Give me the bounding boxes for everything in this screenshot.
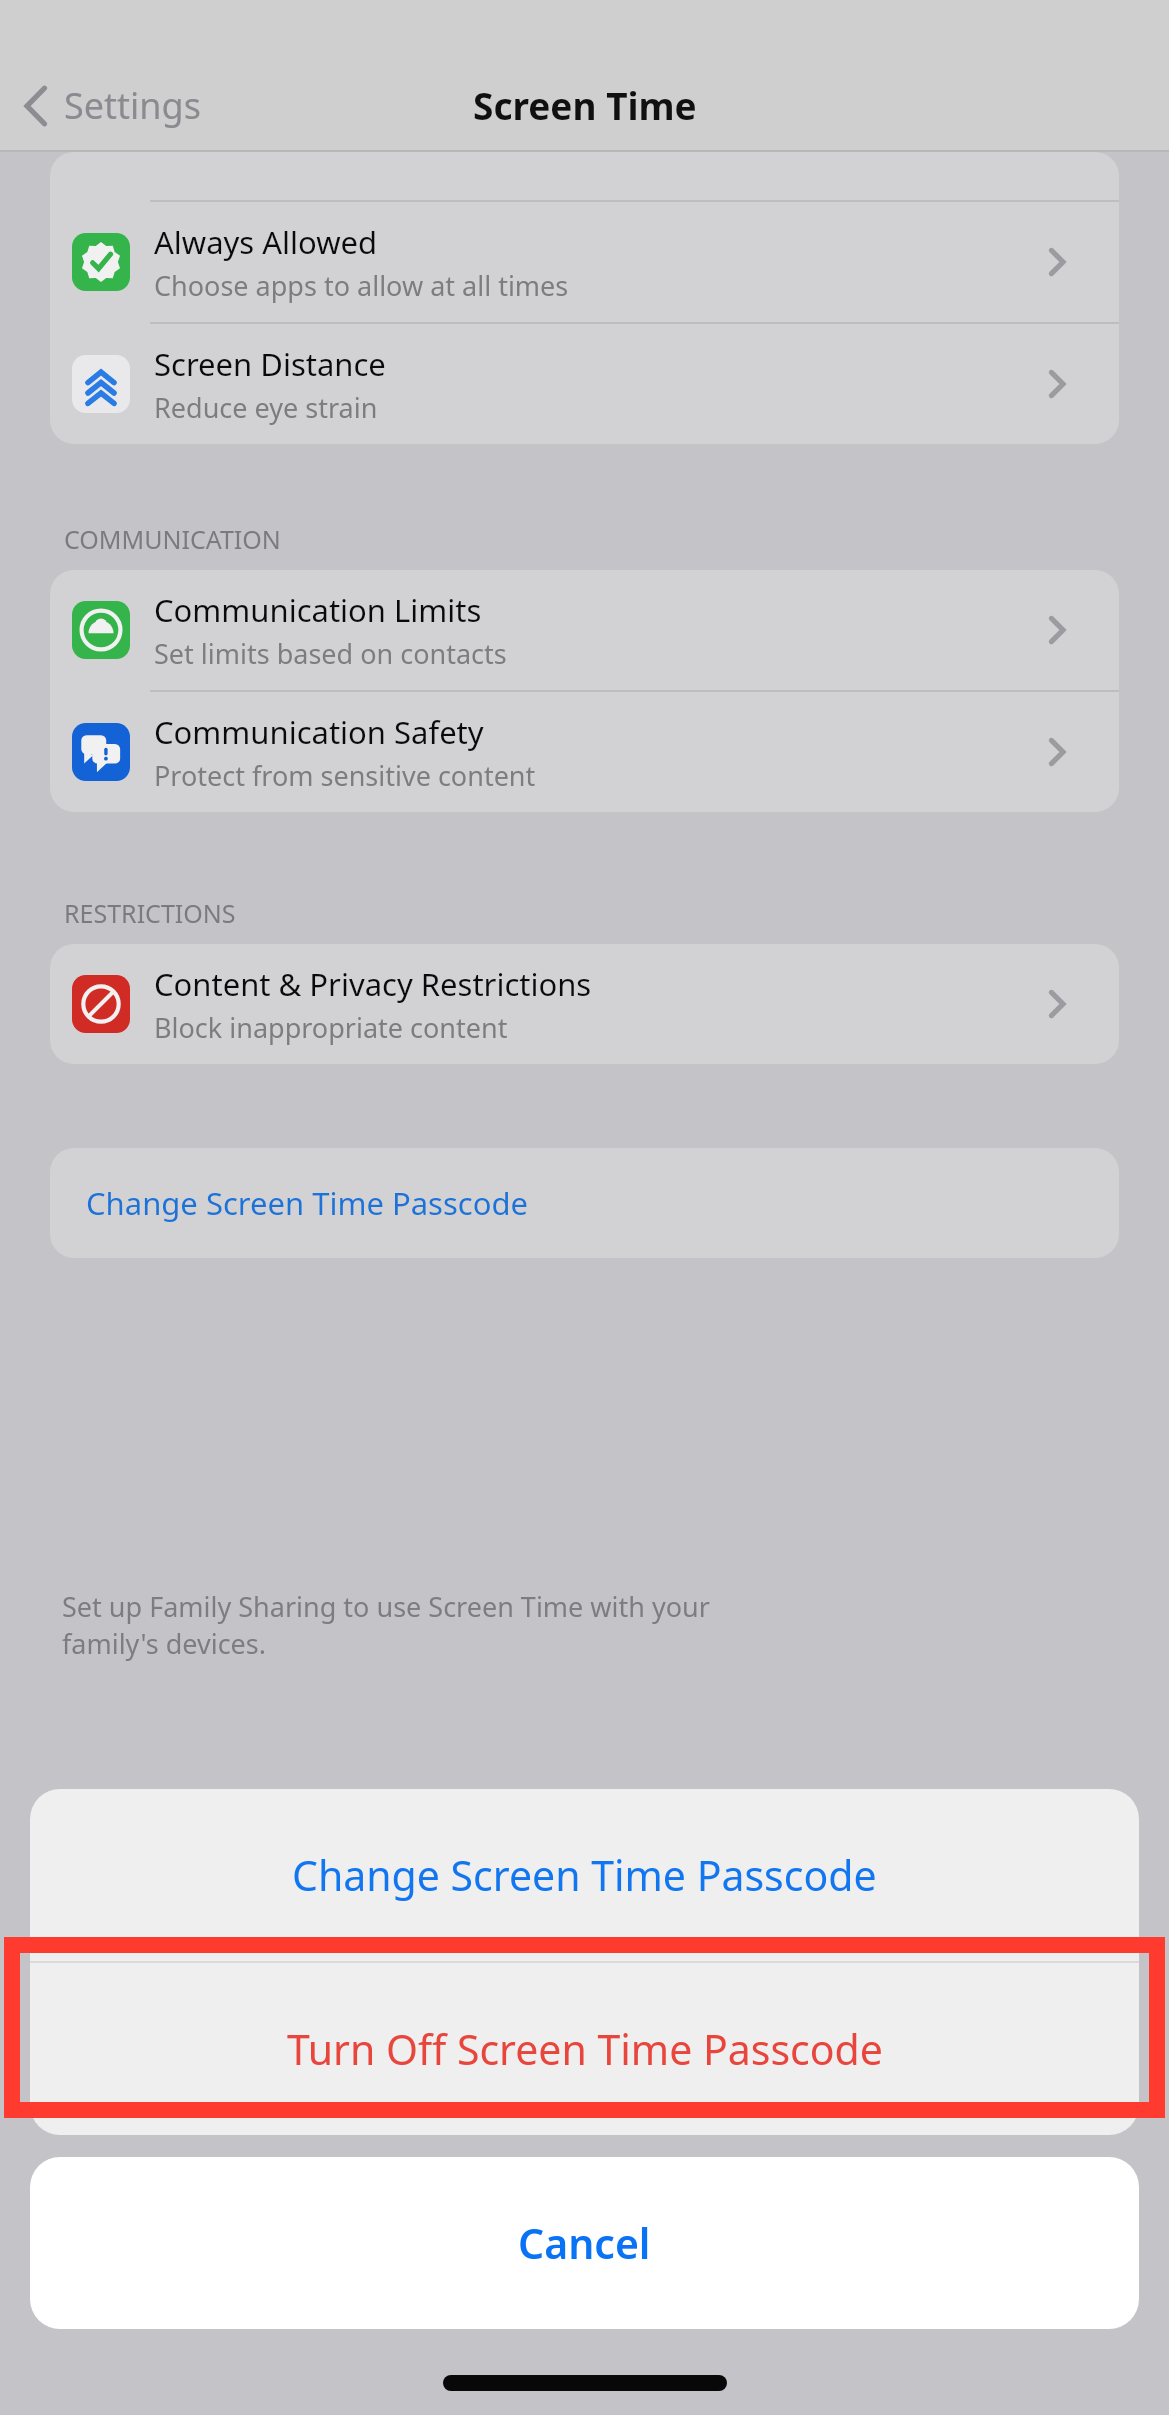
button[interactable]: Turn Off Screen Time Passcode [30,1963,1139,2135]
button[interactable]: Communication Limits [50,570,1119,692]
staticText: Communication Limits [154,589,482,631]
staticText: Block inappropriate content [154,1009,508,1046]
button[interactable]: Change Screen Time Passcode [50,1148,1119,1258]
staticText: Settings [64,81,201,130]
staticText: Change Screen Time Passcode [86,1182,528,1224]
staticText: Reduce eye strain [154,389,378,426]
staticText: Protect from sensitive content [154,757,536,794]
staticText: Turn Off Screen Time Passcode [287,2021,883,2077]
staticText: Set up Family Sharing to use Screen Time… [62,1588,710,1625]
button[interactable]: Always Allowed [50,202,1119,324]
staticText: Cancel [518,2215,651,2271]
other: Home indicator [443,2375,727,2391]
staticText: Screen Time [473,80,697,130]
staticText: Content & Privacy Restrictions [154,963,592,1005]
button[interactable]: Cancel [30,2157,1139,2329]
staticText: Set limits based on contacts [154,635,507,672]
staticText: Always Allowed [154,221,378,263]
staticText: COMMUNICATION [64,522,281,556]
button[interactable]: Screen Distance [50,324,1119,444]
staticText: family's devices. [62,1625,267,1662]
staticText: Choose apps to allow at all times [154,267,569,304]
button[interactable]: Change Screen Time Passcode [30,1789,1139,1961]
staticText: Screen Distance [154,343,386,385]
staticText: RESTRICTIONS [64,896,236,930]
staticText: Communication Safety [154,711,484,753]
button[interactable]: Communication Safety [50,692,1119,812]
staticText: Change Screen Time Passcode [292,1847,877,1903]
button[interactable]: Settings [16,77,207,134]
button[interactable]: Content & Privacy Restrictions [50,944,1119,1064]
